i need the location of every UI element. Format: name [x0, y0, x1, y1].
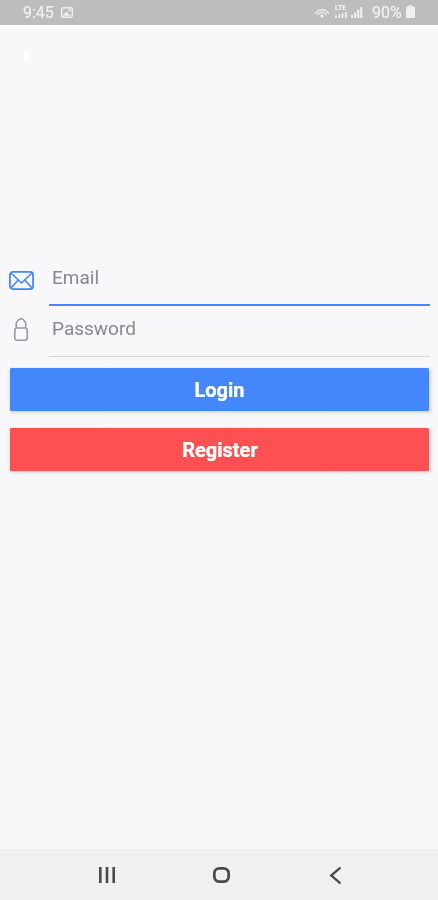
- staticText: LTE: [335, 4, 347, 12]
- staticText: 90%: [372, 3, 402, 22]
- staticText: Email: [52, 266, 100, 288]
- staticText: Password: [52, 317, 136, 339]
- button[interactable]: Home: [189, 850, 253, 900]
- button[interactable]: Register: [10, 428, 429, 471]
- button[interactable]: Back: [303, 850, 367, 900]
- button[interactable]: Recents: [75, 850, 139, 900]
- staticText: 9:45: [23, 3, 54, 22]
- staticText: Register: [182, 438, 258, 461]
- button[interactable]: Login: [10, 368, 429, 411]
- staticText: Login: [194, 378, 245, 401]
